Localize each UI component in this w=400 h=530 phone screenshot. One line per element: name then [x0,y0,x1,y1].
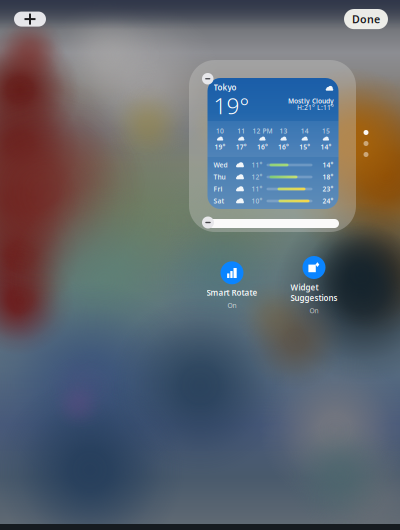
staticText: 16° [278,143,289,151]
button[interactable]: Widget Suggestions [290,256,337,315]
staticText: Fri [213,185,222,193]
staticText: 19° [213,90,249,121]
button[interactable]: Remove widget [202,73,213,84]
staticText: 13 [280,127,288,135]
button[interactable]: Smart Rotate [206,261,257,310]
staticText: Thu [213,173,225,181]
staticText: 18° [322,173,333,181]
staticText: Widget Suggestions [290,282,337,303]
staticText: 10 [216,127,224,135]
staticText: On [309,306,318,315]
staticText: 24° [322,197,333,205]
staticText: 12° [251,173,262,181]
staticText: 11° [251,185,262,193]
staticText: 15 [322,127,330,135]
staticText: 11° [251,161,262,169]
staticText: 14° [320,143,331,151]
staticText: On [227,301,236,310]
button[interactable]: Remove widget [202,216,214,228]
staticText: 10° [251,197,262,205]
staticText: 12 PM [252,127,272,135]
staticText: 14° [322,161,333,169]
staticText: Tokyo [213,82,236,93]
staticText: 19° [215,143,226,151]
button[interactable]: Done [344,9,388,29]
button[interactable]: Add widget [14,12,46,27]
staticText: Wed [213,161,227,169]
staticText: 17° [236,143,247,151]
staticText: 15° [299,143,310,151]
staticText: 16° [257,143,268,151]
staticText: Done [352,12,380,26]
staticText: Mostly Cloudy [288,96,334,105]
staticText: Sat [213,197,224,205]
staticText: 14 [301,127,309,135]
staticText: H:21° L:11° [297,103,334,112]
staticText: Smart Rotate [206,287,257,298]
staticText: 23° [322,185,333,193]
staticText: 11 [237,127,245,135]
